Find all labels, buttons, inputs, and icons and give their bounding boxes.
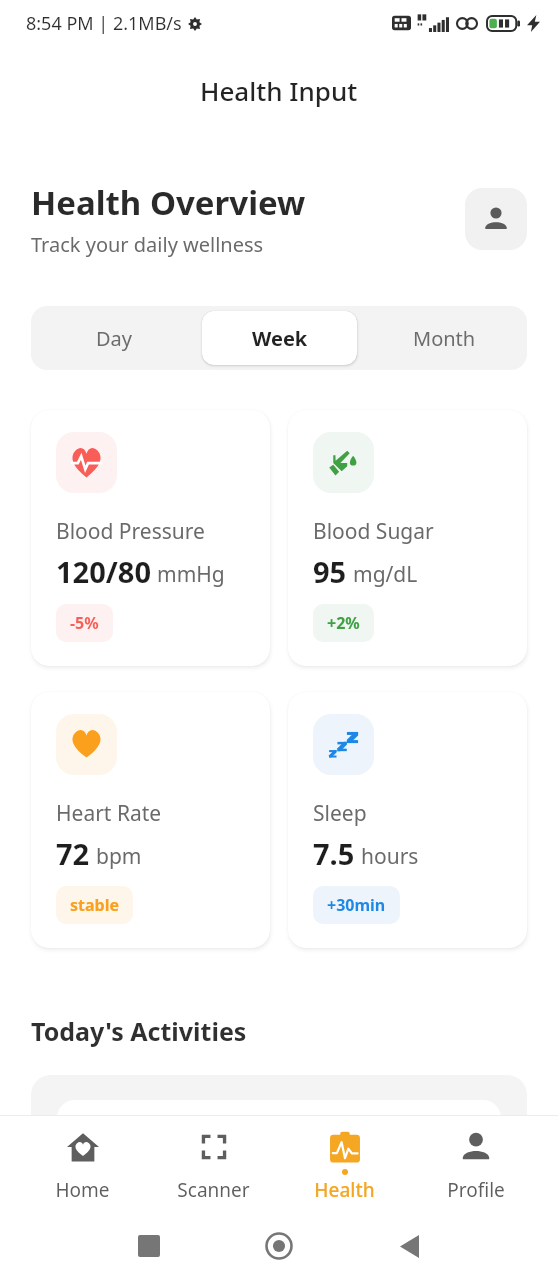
button[interactable]: Scanner: [148, 1116, 279, 1212]
staticText: +2%: [327, 612, 360, 634]
button[interactable]: Today's activity: [31, 1075, 527, 1195]
staticText: Blood Pressure: [56, 517, 205, 546]
staticText: Heart Rate: [56, 799, 162, 828]
button[interactable]: Month: [367, 311, 522, 365]
button[interactable]: Home: [265, 1232, 293, 1260]
staticText: Profile: [447, 1177, 505, 1203]
staticText: stable: [70, 894, 119, 916]
button[interactable]: Health: [279, 1116, 410, 1212]
button[interactable]: Profile: [410, 1116, 541, 1212]
staticText: Home: [55, 1177, 110, 1203]
staticText: Health Input: [200, 73, 358, 108]
button[interactable]: Blood Sugar: [288, 410, 527, 666]
staticText: mmHg: [157, 560, 225, 589]
staticText: Health Overview: [31, 180, 306, 225]
staticText: 7.5: [313, 834, 355, 873]
staticText: bpm: [96, 842, 142, 871]
staticText: 72: [56, 834, 90, 873]
button[interactable]: Profile: [465, 188, 527, 250]
button[interactable]: Heart Rate: [31, 692, 270, 948]
button[interactable]: Home: [17, 1116, 148, 1212]
button[interactable]: Sleep: [288, 692, 527, 948]
staticText: -5%: [70, 612, 99, 634]
staticText: mg/dL: [353, 560, 418, 589]
staticText: Month: [413, 325, 476, 352]
staticText: +30min: [327, 894, 386, 916]
button[interactable]: Recents: [138, 1235, 160, 1257]
staticText: 95: [313, 552, 347, 591]
staticText: Scanner: [177, 1177, 250, 1203]
staticText: Health: [314, 1177, 375, 1203]
staticText: Week: [252, 325, 308, 352]
button[interactable]: Week: [202, 311, 357, 365]
staticText: Day: [96, 325, 133, 352]
staticText: Blood Sugar: [313, 517, 434, 546]
staticText: 8:54 PM | 2.1MB/s: [26, 11, 182, 36]
staticText: 120/80: [56, 552, 151, 591]
button[interactable]: Blood Pressure: [31, 410, 270, 666]
button[interactable]: Day: [36, 311, 192, 365]
staticText: Sleep: [313, 799, 367, 828]
staticText: Track your daily wellness: [31, 231, 264, 258]
staticText: Today's Activities: [31, 1014, 247, 1048]
button[interactable]: Back: [400, 1235, 419, 1258]
staticText: hours: [361, 842, 419, 871]
